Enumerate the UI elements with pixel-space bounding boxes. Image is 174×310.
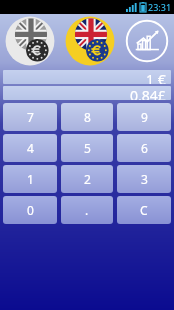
button[interactable]: C bbox=[117, 196, 171, 224]
button[interactable]: 1 € bbox=[3, 70, 171, 84]
button[interactable]: . bbox=[61, 196, 113, 224]
staticText: . bbox=[85, 202, 89, 218]
staticText: 4 bbox=[27, 140, 34, 156]
button[interactable]: 9 bbox=[117, 103, 171, 131]
button[interactable]: 0,84£ bbox=[3, 86, 171, 100]
button[interactable]: 4 bbox=[3, 134, 57, 162]
button[interactable]: Exchange rate chart bbox=[124, 18, 170, 64]
button[interactable]: 6 bbox=[117, 134, 171, 162]
staticText: 0,84£ bbox=[130, 86, 166, 100]
button[interactable]: 5 bbox=[61, 134, 113, 162]
staticText: 1 € bbox=[146, 70, 166, 84]
button[interactable]: Source currency bbox=[4, 15, 56, 67]
staticText: 23:31 bbox=[148, 1, 172, 13]
staticText: 1 bbox=[27, 171, 34, 187]
button[interactable]: 0 bbox=[3, 196, 57, 224]
button[interactable]: 2 bbox=[61, 165, 113, 193]
staticText: 5 bbox=[84, 140, 91, 156]
staticText: 8 bbox=[84, 109, 91, 125]
button[interactable]: 7 bbox=[3, 103, 57, 131]
staticText: 9 bbox=[141, 109, 148, 125]
staticText: 6 bbox=[141, 140, 148, 156]
staticText: 0 bbox=[27, 202, 34, 218]
button[interactable]: Target currency bbox=[64, 15, 116, 67]
button[interactable]: 1 bbox=[3, 165, 57, 193]
staticText: 2 bbox=[84, 171, 91, 187]
button[interactable]: 3 bbox=[117, 165, 171, 193]
staticText: C bbox=[140, 202, 148, 218]
staticText: 3 bbox=[141, 171, 148, 187]
staticText: 7 bbox=[27, 109, 34, 125]
button[interactable]: 8 bbox=[61, 103, 113, 131]
